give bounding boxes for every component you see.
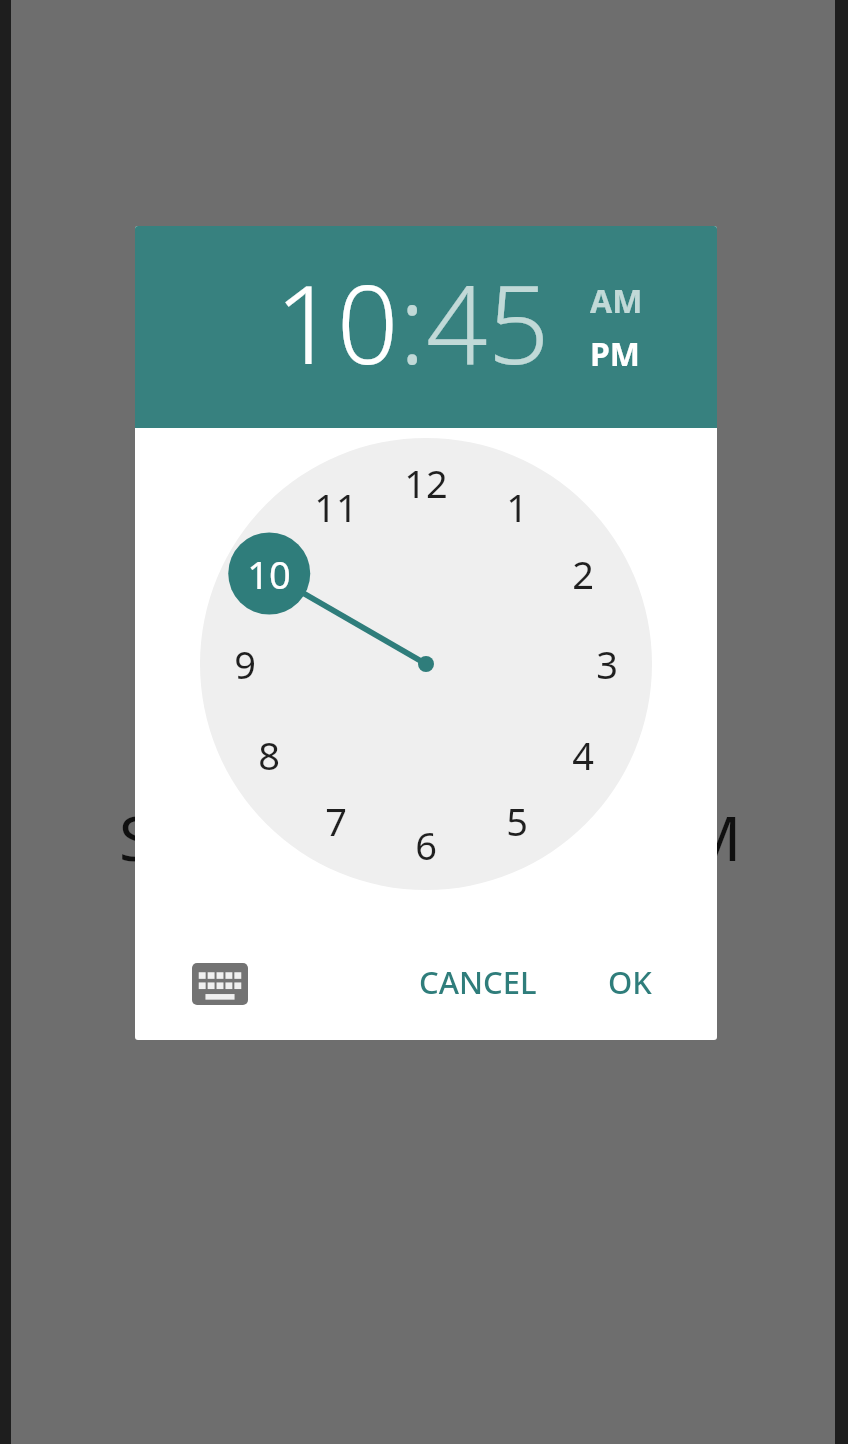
staticText: Select time 10:45 AM 0	[100, 795, 760, 875]
button[interactable]: PM	[590, 331, 670, 377]
staticText: 9	[234, 638, 256, 690]
staticText: 1	[506, 481, 528, 533]
staticText: 45	[426, 249, 550, 396]
staticText: 6	[415, 819, 437, 871]
button[interactable]: 3	[572, 634, 642, 694]
button[interactable]: 5	[482, 791, 552, 851]
button[interactable]: Switch to text input mode	[185, 953, 255, 1015]
button[interactable]: 11	[301, 477, 371, 537]
staticText: AM	[590, 279, 643, 323]
staticText: 10	[275, 249, 399, 396]
button[interactable]: 4	[548, 725, 618, 785]
staticText: 3	[596, 638, 618, 690]
staticText: 2	[572, 548, 594, 600]
staticText: 5	[506, 795, 528, 847]
staticText: :	[399, 249, 426, 396]
button[interactable]: 6	[391, 815, 461, 875]
staticText: 10	[247, 548, 291, 600]
button[interactable]: 1	[482, 477, 552, 537]
button[interactable]: 8	[234, 725, 304, 785]
button[interactable]: 2	[548, 544, 618, 604]
staticText: 8	[258, 729, 280, 781]
staticText: 11	[314, 481, 358, 533]
staticText: 7	[325, 795, 347, 847]
button[interactable]: 9	[210, 634, 280, 694]
staticText: 4	[572, 729, 594, 781]
button[interactable]: 12	[391, 453, 461, 513]
button[interactable]: AM	[590, 278, 670, 324]
staticText: PM	[590, 332, 641, 376]
staticText: 12	[404, 457, 448, 509]
button[interactable]: 10	[234, 544, 304, 604]
button[interactable]: 10	[275, 249, 399, 396]
button[interactable]: 45	[426, 249, 550, 396]
staticText: CANCEL	[419, 961, 537, 1003]
button[interactable]: OK	[587, 948, 672, 1016]
button[interactable]: CANCEL	[410, 948, 545, 1016]
staticText: OK	[608, 961, 652, 1003]
button[interactable]: 7	[301, 791, 371, 851]
